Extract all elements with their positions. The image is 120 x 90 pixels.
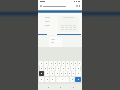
button[interactable]: Key — [70, 61, 73, 66]
button[interactable]: Key — [66, 61, 69, 66]
button[interactable]: Navigation — [70, 84, 76, 90]
button[interactable]: Key — [58, 61, 61, 66]
button[interactable]: Navigation — [45, 84, 51, 90]
button[interactable]: Key — [62, 61, 65, 66]
button[interactable]: Key — [72, 71, 75, 76]
button[interactable]: Key — [45, 71, 49, 76]
button[interactable]: Space — [56, 77, 69, 82]
button[interactable]: Key — [78, 61, 81, 66]
button[interactable]: Key — [64, 71, 67, 76]
button[interactable]: Key — [44, 61, 48, 66]
button[interactable] — [49, 37, 62, 47]
button[interactable]: Navigation — [57, 84, 63, 90]
button[interactable]: Key — [68, 71, 71, 76]
button[interactable]: Key — [55, 71, 59, 76]
button[interactable]: Key — [76, 66, 80, 71]
button[interactable]: Key — [44, 66, 47, 71]
button[interactable]: Key — [66, 66, 70, 71]
button[interactable]: Key — [40, 66, 43, 71]
button[interactable]: Symbols — [39, 77, 44, 82]
button[interactable]: Emoji — [50, 77, 55, 82]
button[interactable]: Key — [60, 71, 63, 76]
button[interactable]: Shift — [39, 71, 44, 76]
button[interactable]: Key — [61, 66, 65, 71]
button[interactable]: Key — [52, 66, 55, 71]
button[interactable]: Key — [48, 66, 51, 71]
button[interactable]: Comma — [45, 77, 49, 82]
button[interactable]: Key — [74, 61, 77, 66]
button[interactable]: Key — [54, 61, 57, 66]
button[interactable]: Backspace — [76, 71, 81, 76]
button[interactable]: Key — [50, 71, 54, 76]
button[interactable]: Period — [70, 77, 74, 82]
button[interactable]: Enter — [75, 77, 81, 82]
button[interactable]: Key — [39, 61, 43, 66]
button[interactable]: Key — [49, 61, 53, 66]
button[interactable]: Key — [56, 66, 60, 71]
button[interactable]: Key — [71, 66, 75, 71]
button[interactable] — [58, 16, 79, 32]
